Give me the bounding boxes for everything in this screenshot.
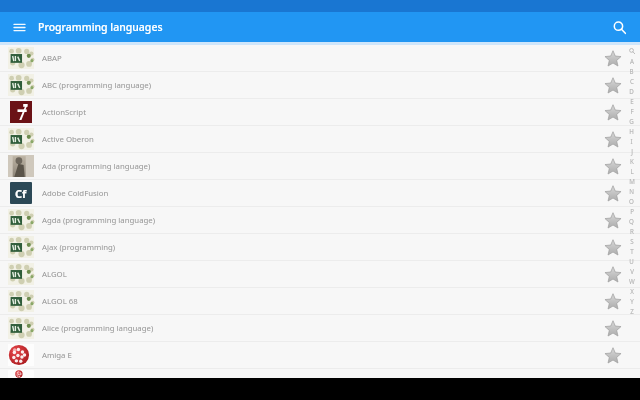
staticText: K: [630, 157, 634, 165]
staticText: T: [630, 247, 634, 255]
button[interactable]: Open navigation drawer: [8, 16, 30, 38]
button[interactable]: Add Alice (programming language) to favo…: [603, 319, 622, 338]
staticText: ALGOL 68: [42, 296, 603, 307]
button[interactable]: B: [626, 66, 637, 76]
button[interactable]: I: [626, 136, 637, 146]
staticText: Alice (programming language): [42, 323, 603, 334]
staticText: C: [630, 77, 634, 85]
button[interactable]: Y: [626, 296, 637, 306]
button[interactable]: Add ActionScript to favourites: [603, 103, 622, 122]
staticText: R: [630, 227, 634, 235]
button[interactable]: Amiga E: [0, 342, 640, 368]
staticText: M: [629, 177, 635, 185]
button[interactable]: S: [626, 236, 637, 246]
button[interactable]: L: [626, 166, 637, 176]
button[interactable]: C: [626, 76, 637, 86]
button[interactable]: ActionScript: [0, 99, 640, 125]
button[interactable]: E: [626, 96, 637, 106]
button[interactable]: Z: [626, 306, 637, 316]
staticText: Z: [630, 307, 634, 315]
staticText: E: [630, 97, 634, 105]
staticText: Ajax (programming): [42, 242, 603, 253]
staticText: A: [630, 57, 634, 65]
button[interactable]: Add ALGOL to favourites: [603, 265, 622, 284]
button[interactable]: M: [626, 176, 637, 186]
staticText: U: [629, 257, 634, 265]
staticText: Cf: [15, 186, 27, 201]
staticText: Q: [629, 217, 634, 225]
button[interactable]: Add ABC (programming language) to favour…: [603, 76, 622, 95]
button[interactable]: G: [626, 116, 637, 126]
button[interactable]: T: [626, 246, 637, 256]
staticText: ActionScript: [42, 107, 603, 118]
button[interactable]: Add Agda (programming language) to favou…: [603, 211, 622, 230]
button[interactable]: Add Ada (programming language) to favour…: [603, 157, 622, 176]
button[interactable]: J: [626, 146, 637, 156]
button[interactable]: P: [626, 206, 637, 216]
button[interactable]: Ajax (programming): [0, 234, 640, 260]
button[interactable]: U: [626, 256, 637, 266]
button[interactable]: Add Amiga E to favourites: [603, 346, 622, 365]
staticText: P: [630, 207, 634, 215]
staticText: B: [629, 67, 634, 75]
button[interactable]: Active Oberon: [0, 126, 640, 152]
staticText: Y: [630, 297, 634, 305]
button[interactable]: ALGOL: [0, 261, 640, 287]
button[interactable]: Add Adobe ColdFusion to favourites: [603, 184, 622, 203]
staticText: I: [630, 137, 633, 145]
button[interactable]: Add Active Oberon to favourites: [603, 130, 622, 149]
button[interactable]: ABC (programming language): [0, 72, 640, 98]
button[interactable]: ABAP: [0, 45, 640, 71]
staticText: ABC (programming language): [42, 80, 603, 91]
staticText: D: [629, 87, 634, 95]
button[interactable]: Add Ajax (programming) to favourites: [603, 238, 622, 257]
staticText: Agda (programming language): [42, 215, 603, 226]
button[interactable]: K: [626, 156, 637, 166]
staticText: Adobe ColdFusion: [42, 188, 603, 199]
button[interactable]: D: [626, 86, 637, 96]
button[interactable]: Cf: [0, 180, 640, 206]
staticText: S: [630, 237, 634, 245]
button[interactable]: R: [626, 226, 637, 236]
button[interactable]: W: [626, 276, 637, 286]
staticText: Programming languages: [38, 20, 607, 34]
staticText: L: [630, 167, 634, 175]
button[interactable]: N: [626, 186, 637, 196]
staticText: Active Oberon: [42, 134, 603, 145]
button[interactable]: Alice (programming language): [0, 315, 640, 341]
staticText: F: [630, 107, 634, 115]
button[interactable]: ALGOL 68: [0, 288, 640, 314]
staticText: J: [631, 147, 633, 155]
button[interactable]: Add ALGOL 68 to favourites: [603, 292, 622, 311]
staticText: X: [630, 287, 634, 295]
staticText: V: [630, 267, 634, 275]
button[interactable]: Q: [626, 216, 637, 226]
button[interactable]: H: [626, 126, 637, 136]
staticText: N: [629, 187, 634, 195]
staticText: O: [629, 197, 634, 205]
button[interactable]: X: [626, 286, 637, 296]
button[interactable]: Search index: [626, 46, 637, 56]
button[interactable]: O: [626, 196, 637, 206]
button[interactable]: F: [626, 106, 637, 116]
staticText: H: [629, 127, 634, 135]
staticText: ABAP: [42, 53, 603, 64]
button[interactable]: V: [626, 266, 637, 276]
staticText: G: [629, 117, 634, 125]
button[interactable]: Agda (programming language): [0, 207, 640, 233]
staticText: ALGOL: [42, 269, 603, 280]
button[interactable]: A: [626, 56, 637, 66]
button[interactable]: Ada (programming language): [0, 153, 640, 179]
button[interactable]: Search: [607, 15, 631, 39]
staticText: Ada (programming language): [42, 161, 603, 172]
button[interactable]: Add ABAP to favourites: [603, 49, 622, 68]
staticText: Amiga E: [42, 350, 603, 361]
staticText: W: [629, 277, 635, 285]
